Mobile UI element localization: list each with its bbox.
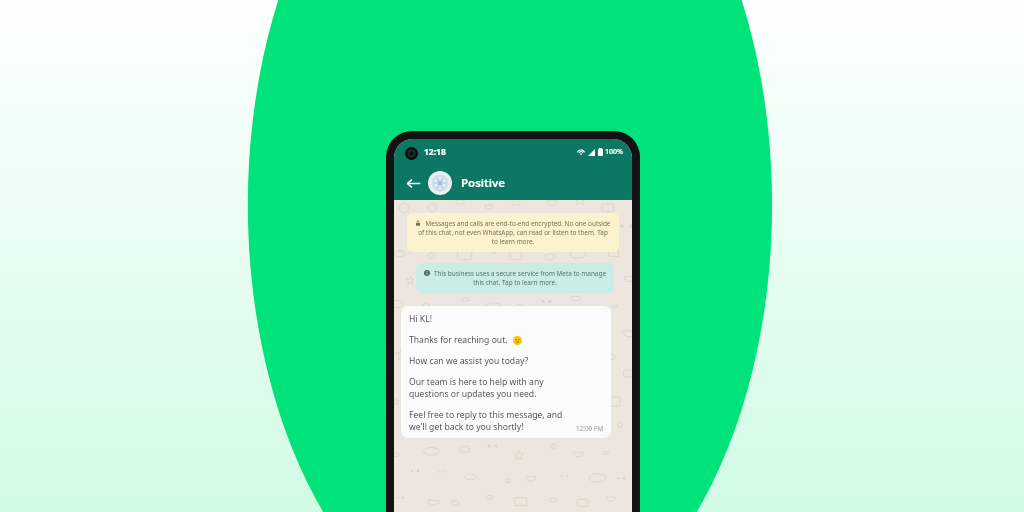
staticText: Feel free to reply to this message, and [409, 409, 563, 421]
staticText: Messages and calls are end-to-end encryp… [415, 219, 611, 246]
button[interactable]: Positive [428, 171, 506, 195]
button[interactable]: Messages and calls are end-to-end encryp… [407, 213, 619, 252]
staticText: we'll get back to you shortly! [409, 421, 524, 433]
button[interactable]: Back [400, 170, 426, 196]
button[interactable]: This business uses a secure service from… [416, 263, 614, 293]
staticText: Hi KL! [409, 313, 432, 325]
staticText: This business uses a secure service from… [424, 269, 606, 287]
staticText: 100% [605, 147, 623, 157]
staticText: 12:00 PM [576, 424, 604, 433]
button[interactable]: Hi KL! [401, 306, 611, 438]
staticText: Thanks for reaching out. [409, 334, 508, 346]
staticText: How can we assist you today? [409, 355, 529, 367]
staticText: Our team is here to help with any [409, 376, 544, 388]
staticText: questions or updates you need. [409, 388, 537, 400]
staticText: 12:18 [424, 146, 446, 158]
staticText: Positive [461, 175, 506, 191]
